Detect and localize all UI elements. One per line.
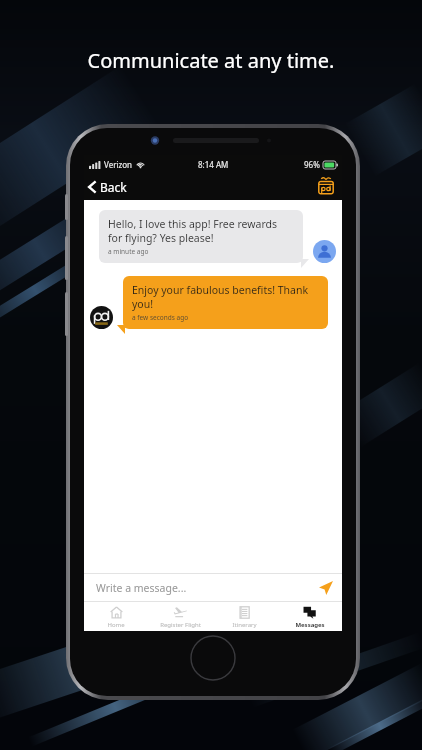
staticText: Enjoy your fabulous benefits! Thank you! [132, 283, 319, 311]
button[interactable]: Hello, I love this app! Free rewards for… [99, 210, 303, 263]
staticText: a few seconds ago [132, 313, 189, 322]
button[interactable]: Enjoy your fabulous benefits! Thank you! [123, 276, 328, 329]
staticText: 96% [304, 159, 320, 170]
staticText: Hello, I love this app! Free rewards for… [108, 217, 294, 245]
staticText: Write a message... [96, 581, 310, 595]
staticText: Back [100, 179, 127, 195]
staticText: a minute ago [108, 247, 149, 256]
staticText: Communicate at any time. [0, 47, 422, 74]
staticText: Home [107, 621, 125, 629]
button[interactable]: Write a message... [84, 573, 342, 602]
button[interactable]: Send [310, 581, 342, 595]
button[interactable]: Messages [277, 602, 342, 631]
staticText: Verizon [104, 159, 133, 170]
staticText: 8:14 AM [198, 159, 229, 170]
staticText: Messages [295, 621, 325, 629]
button[interactable]: Back [84, 176, 135, 198]
staticText: Register Flight [160, 621, 201, 629]
button[interactable]: Home [84, 602, 148, 631]
button[interactable]: Itinerary [212, 602, 277, 631]
button[interactable]: Rewards [316, 177, 342, 197]
button[interactable]: Register Flight [148, 602, 212, 631]
staticText: Itinerary [232, 621, 257, 629]
